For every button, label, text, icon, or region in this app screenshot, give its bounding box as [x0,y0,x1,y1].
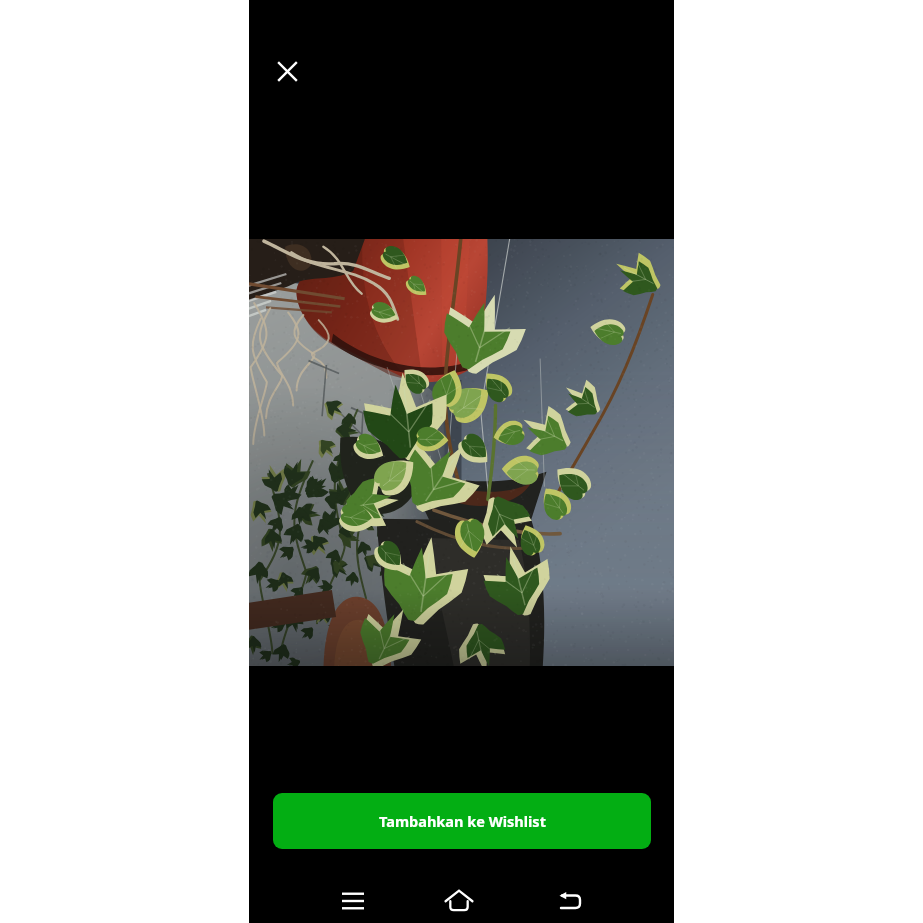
button[interactable]: Back [546,876,594,923]
button[interactable]: Recent apps [329,877,377,923]
staticText: Tambahkan ke Wishlist [379,811,546,831]
button[interactable]: Close [264,48,310,94]
button[interactable]: Home [435,875,483,923]
button[interactable]: Tambahkan ke Wishlist [273,793,651,849]
